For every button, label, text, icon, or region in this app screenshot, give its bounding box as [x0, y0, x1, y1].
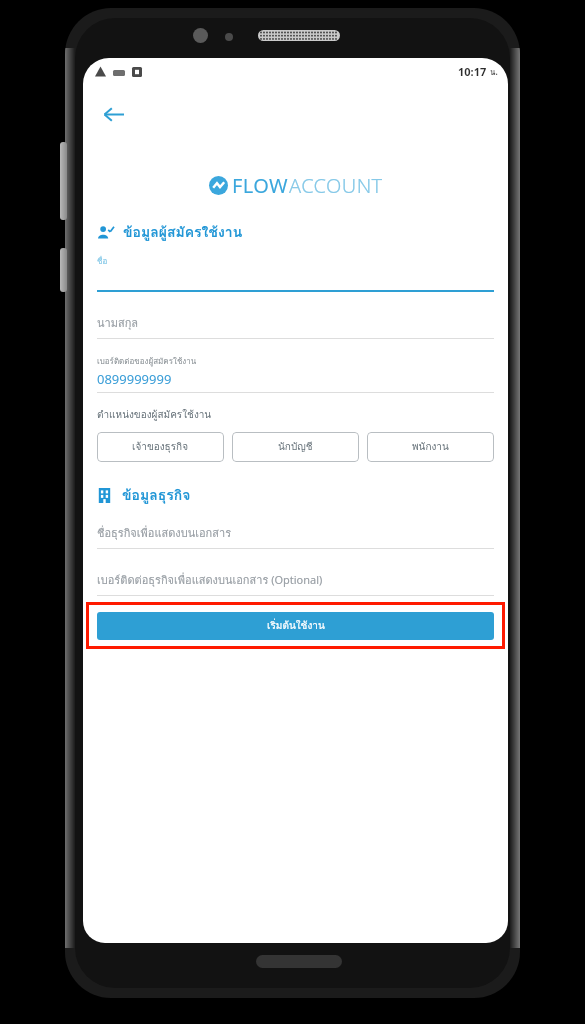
button[interactable]: เริ่มต้นใช้งาน	[97, 612, 494, 640]
button[interactable]: ชื่อธุรกิจเพื่อแสดงบนเอกสาร	[97, 524, 494, 549]
staticText: ตำแหน่งของผู้สมัครใช้งาน	[97, 407, 212, 423]
button[interactable]: นักบัญชี	[232, 432, 359, 462]
staticText: ชื่อ	[97, 255, 108, 268]
staticText: เริ่มต้นใช้งาน	[267, 618, 325, 634]
staticText: ACCOUNT	[289, 172, 383, 199]
button[interactable]: Back	[93, 94, 133, 134]
staticText: น.	[490, 66, 498, 79]
staticText: 10:17	[458, 64, 487, 79]
staticText: ข้อมูลธุรกิจ	[122, 484, 191, 506]
staticText: นามสกุล	[97, 314, 139, 331]
staticText: เจ้าของธุรกิจ	[132, 439, 189, 455]
staticText: FLOW	[232, 172, 289, 199]
staticText: เบอร์ติดต่อธุรกิจเพื่อแสดงบนเอกสาร (Opti…	[97, 571, 323, 588]
staticText: 0899999999	[97, 370, 172, 388]
button[interactable]: เจ้าของธุรกิจ	[97, 432, 224, 462]
button[interactable]: เบอร์ติดต่อธุรกิจเพื่อแสดงบนเอกสาร (Opti…	[97, 571, 494, 596]
button[interactable]: นามสกุล	[97, 314, 494, 339]
staticText: เบอร์ติดต่อของผู้สมัครใช้งาน	[97, 355, 197, 368]
staticText: ข้อมูลผู้สมัครใช้งาน	[123, 221, 243, 243]
button[interactable]: พนักงาน	[367, 432, 494, 462]
button[interactable]: เบอร์ติดต่อของผู้สมัครใช้งาน	[97, 355, 494, 393]
staticText: พนักงาน	[412, 439, 449, 455]
staticText: ชื่อธุรกิจเพื่อแสดงบนเอกสาร	[97, 524, 232, 541]
button[interactable]: ชื่อ	[97, 255, 494, 292]
staticText: นักบัญชี	[278, 439, 313, 455]
